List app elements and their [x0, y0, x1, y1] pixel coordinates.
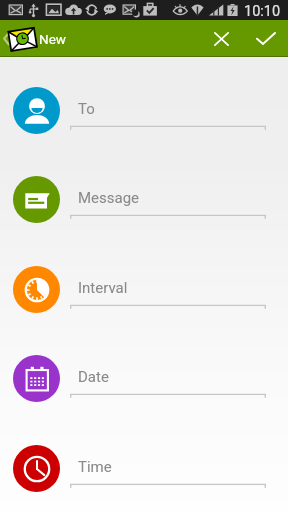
button[interactable]: Time: [0, 424, 288, 512]
button[interactable]: Discard: [199, 20, 244, 57]
button[interactable]: Save: [244, 20, 287, 57]
staticText: New: [39, 31, 66, 47]
staticText: Message: [78, 189, 140, 207]
staticText: Interval: [78, 279, 128, 297]
staticText: 10:10: [244, 3, 281, 20]
button[interactable]: Interval: [0, 245, 288, 334]
button[interactable]: Date: [0, 334, 288, 423]
staticText: Date: [78, 368, 109, 386]
staticText: Time: [78, 458, 112, 476]
staticText: To: [78, 100, 95, 118]
button[interactable]: Message: [0, 155, 288, 244]
button[interactable]: New: [0, 20, 158, 57]
button[interactable]: To: [0, 66, 288, 155]
